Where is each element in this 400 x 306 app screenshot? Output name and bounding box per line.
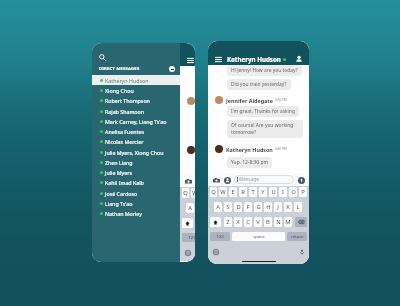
button[interactable]: return (287, 232, 307, 241)
button[interactable]: U (269, 187, 277, 197)
button[interactable]: D (234, 202, 242, 212)
button[interactable]: H (264, 202, 272, 212)
button[interactable]: Katheryn Hudson (92, 75, 180, 85)
button[interactable]: E (229, 187, 237, 197)
button[interactable]: Record voice message (297, 176, 305, 184)
button[interactable]: Julie Myers (92, 167, 180, 177)
button[interactable]: Open navigation menu (186, 56, 195, 65)
button[interactable]: L (294, 202, 302, 212)
staticText: U (271, 188, 276, 196)
button[interactable]: O (289, 187, 297, 197)
staticText: Zhen Liang (105, 159, 133, 166)
staticText: Kahil Imad Kalb (105, 179, 144, 186)
button[interactable]: M (284, 217, 292, 227)
button[interactable]: Kahil Imad Kalb (92, 177, 180, 188)
button[interactable]: K (284, 202, 292, 212)
button[interactable]: G (254, 202, 262, 212)
button[interactable]: Change keyboard (212, 248, 219, 255)
button[interactable]: F (244, 202, 252, 212)
button[interactable]: Did you train yesterday? (231, 81, 287, 88)
button[interactable]: P (299, 187, 307, 197)
button[interactable]: Yup. 12-8:30 pm (231, 159, 268, 166)
staticText: return (291, 234, 304, 240)
staticText: 123 (216, 234, 224, 240)
button[interactable]: Mark Carney, Liang Ts'ao (92, 116, 180, 126)
button[interactable]: Robert Thompson (92, 95, 180, 106)
staticText: Rajab Shamoon (105, 108, 145, 115)
button[interactable]: Hi Jenny! How are you today? (231, 67, 298, 74)
button[interactable]: Camera (212, 176, 220, 184)
button[interactable]: Nathan Morley (92, 208, 180, 218)
staticText: E (231, 188, 235, 196)
button[interactable]: Q (182, 188, 189, 198)
button[interactable]: A (186, 203, 194, 213)
staticText: V (256, 218, 260, 226)
button[interactable]: Contacts (223, 176, 231, 184)
button[interactable]: Change keyboard (184, 249, 191, 256)
staticText: R (241, 188, 245, 196)
button[interactable]: Liang Ts'ao (92, 198, 180, 208)
button[interactable]: B (264, 217, 272, 227)
staticText: Hi Jenny! How are you today? (231, 67, 298, 74)
staticText: L (296, 203, 300, 211)
button[interactable]: Open navigation menu (214, 55, 223, 64)
button[interactable]: Zhen Liang (92, 157, 180, 167)
button[interactable]: A (214, 202, 222, 212)
button[interactable]: Nicolas Mercier (92, 136, 180, 147)
button[interactable]: Shift (210, 217, 221, 227)
staticText: Mark Carney, Liang Ts'ao (105, 118, 167, 125)
staticText: Z (226, 218, 230, 226)
button[interactable]: I (279, 187, 287, 197)
staticText: Julie Myers (105, 169, 133, 176)
button[interactable]: José Cardoso (92, 188, 180, 198)
button[interactable]: I'm great. Thanks for asking (231, 108, 295, 115)
button[interactable]: Shift (182, 218, 193, 228)
button[interactable]: V (254, 217, 262, 227)
staticText: I'm great. Thanks for asking (231, 108, 295, 115)
button[interactable]: Collapse direct messages (169, 66, 175, 72)
staticText: A (216, 203, 220, 211)
staticText: Robert Thompson (105, 97, 150, 104)
staticText: I (282, 188, 284, 196)
button[interactable]: Anelisa Fuentes (92, 126, 180, 136)
button[interactable]: Julie Myers, Xiong Chou (92, 147, 180, 157)
button[interactable]: T (249, 187, 257, 197)
staticText: Nicolas Mercier (105, 138, 144, 145)
staticText: S (226, 203, 230, 211)
button[interactable]: Search (97, 52, 107, 62)
button[interactable]: Dictate (298, 248, 305, 255)
staticText: G (256, 203, 261, 211)
button[interactable]: X (234, 217, 242, 227)
button[interactable]: J (274, 202, 282, 212)
button[interactable]: Y (259, 187, 267, 197)
button[interactable]: N (274, 217, 282, 227)
button[interactable]: C (244, 217, 252, 227)
button[interactable]: space (232, 232, 285, 241)
staticText: Y (261, 188, 265, 196)
button[interactable]: Contact profile (294, 54, 304, 64)
button[interactable]: Message (234, 175, 294, 184)
button[interactable]: R (239, 187, 247, 197)
button[interactable]: S (224, 202, 232, 212)
button[interactable]: Rajab Shamoon (92, 106, 180, 116)
button[interactable]: Z (224, 217, 232, 227)
staticText: M (285, 218, 291, 226)
staticText: O (291, 188, 296, 196)
button[interactable]: Camera (184, 177, 192, 185)
staticText: 4:10 PM (275, 98, 287, 102)
button[interactable]: Of course! Are you working tomorrow? (231, 122, 299, 136)
button[interactable]: Q (210, 187, 217, 197)
button[interactable]: W (219, 187, 227, 197)
staticText: W (220, 188, 226, 196)
staticText: B (266, 218, 270, 226)
button[interactable]: Xiong Chou (92, 85, 180, 95)
staticText: Of course! Are you working tomorrow? (231, 122, 299, 136)
button[interactable]: 123 (210, 232, 230, 241)
staticText: Did you train yesterday? (231, 81, 287, 88)
staticText: A (188, 204, 192, 212)
button[interactable]: W (191, 188, 195, 198)
button[interactable]: 123 (182, 233, 195, 242)
button[interactable]: Backspace (295, 217, 307, 227)
staticText: W (192, 189, 195, 197)
staticText: 4:40 PM (275, 147, 287, 151)
